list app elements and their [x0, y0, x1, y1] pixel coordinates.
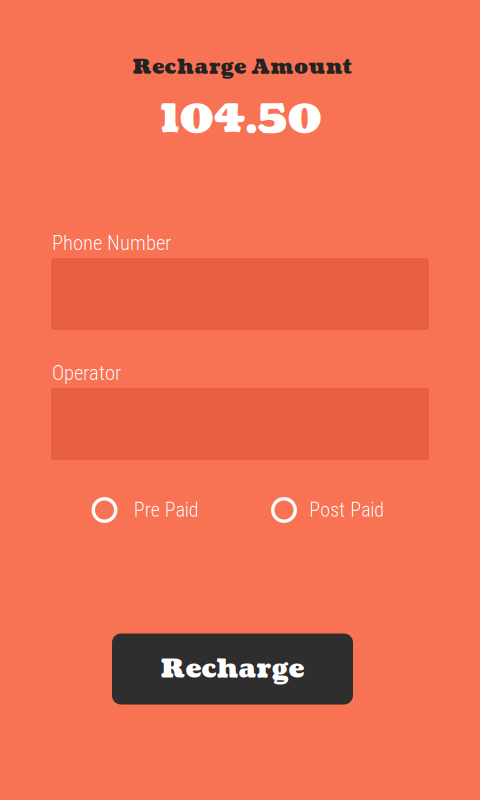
- staticText: Pre Paid: [134, 498, 199, 522]
- button[interactable]: Pre Paid: [93, 495, 203, 525]
- staticText: Operator: [52, 361, 121, 385]
- staticText: Recharge: [160, 650, 304, 688]
- staticText: Recharge Amount: [132, 52, 351, 81]
- button[interactable]: Post Paid: [273, 495, 389, 525]
- staticText: Post Paid: [309, 498, 384, 522]
- staticText: 104.50: [160, 93, 321, 147]
- staticText: Phone Number: [52, 231, 171, 255]
- button[interactable]: Recharge: [112, 633, 353, 704]
